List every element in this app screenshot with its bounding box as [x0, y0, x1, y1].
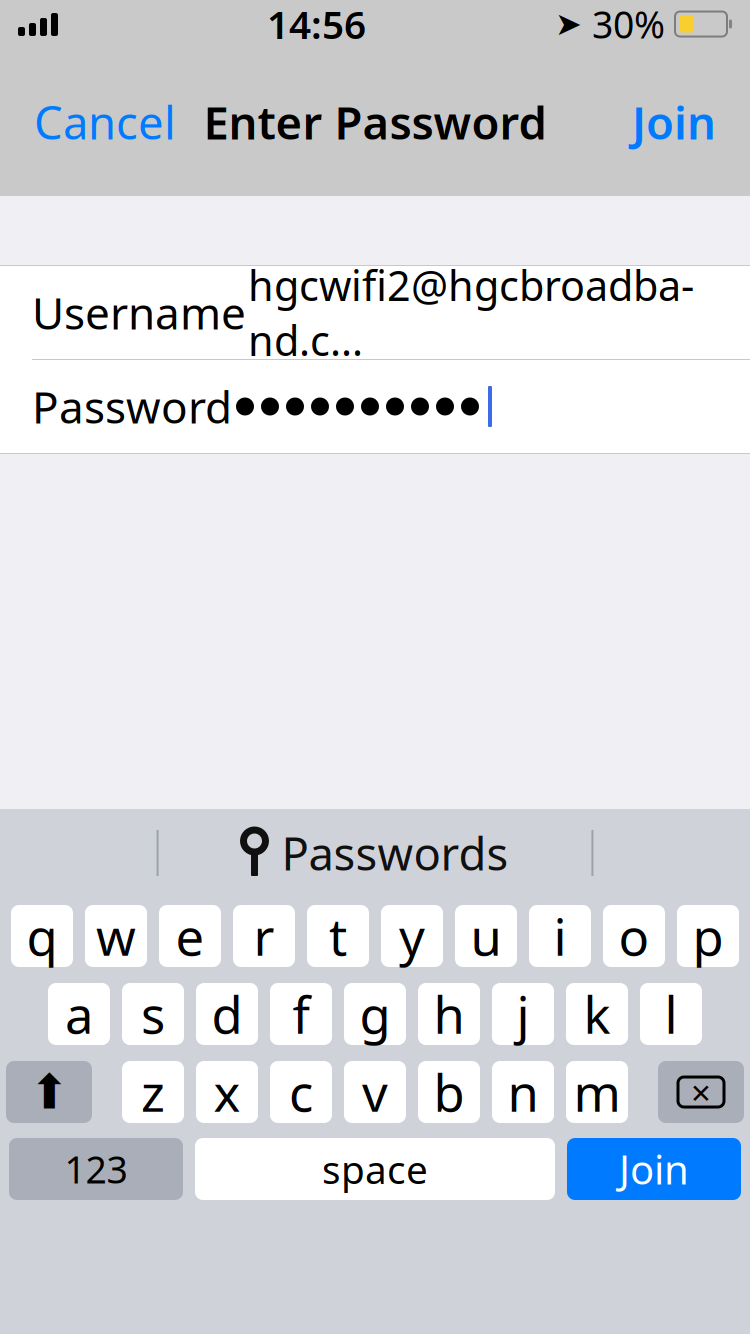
staticText: Passwords	[281, 823, 508, 883]
button[interactable]: c	[270, 1061, 332, 1123]
button[interactable]: v	[344, 1061, 406, 1123]
staticText: h	[433, 980, 464, 1048]
button[interactable]: Password	[0, 360, 750, 453]
staticText: o	[618, 902, 649, 970]
staticText: d	[211, 980, 242, 1048]
button[interactable]: g	[344, 983, 406, 1045]
staticText: g	[359, 980, 390, 1048]
staticText: w	[96, 902, 136, 970]
staticText: a	[65, 980, 93, 1048]
button[interactable]: w	[85, 905, 147, 967]
button[interactable]: h	[418, 983, 480, 1045]
staticText: m	[573, 1058, 620, 1126]
staticText: Password	[32, 377, 232, 436]
button[interactable]: Delete	[658, 1061, 744, 1123]
staticText: 123	[64, 1144, 127, 1194]
staticText: n	[507, 1058, 538, 1126]
button[interactable]: Username	[0, 266, 750, 359]
button[interactable]: a	[48, 983, 110, 1045]
staticText: f	[292, 980, 309, 1048]
button[interactable]: space	[195, 1138, 555, 1200]
staticText: hgcwifi2@hgcbroadband.c...	[248, 258, 694, 367]
button[interactable]: l	[640, 983, 702, 1045]
staticText: s	[141, 980, 165, 1048]
button[interactable]: t	[307, 905, 369, 967]
staticText: l	[664, 980, 677, 1048]
button[interactable]: q	[11, 905, 73, 967]
staticText: r	[253, 902, 274, 970]
staticText: Join	[619, 1142, 689, 1195]
staticText: 30%	[592, 0, 665, 49]
staticText: Username	[32, 283, 246, 342]
button[interactable]: Cancel	[18, 82, 192, 162]
staticText: ⬆	[29, 1065, 69, 1119]
button[interactable]: Join	[616, 82, 732, 162]
staticText: p	[692, 902, 723, 970]
button[interactable]: z	[122, 1061, 184, 1123]
button[interactable]: Shift	[6, 1061, 92, 1123]
button[interactable]: n	[492, 1061, 554, 1123]
button[interactable]: p	[677, 905, 739, 967]
button[interactable]: f	[270, 983, 332, 1045]
button[interactable]: i	[529, 905, 591, 967]
staticText: ×	[691, 1069, 711, 1115]
staticText: q	[26, 902, 57, 970]
staticText: Cancel	[34, 92, 176, 152]
button[interactable]: x	[196, 1061, 258, 1123]
staticText: k	[583, 980, 610, 1048]
button[interactable]: k	[566, 983, 628, 1045]
staticText: y	[399, 902, 425, 970]
button[interactable]: Join	[567, 1138, 741, 1200]
button[interactable]: s	[122, 983, 184, 1045]
staticText: 14:56	[267, 0, 366, 50]
staticText: v	[362, 1058, 388, 1126]
button[interactable]: e	[159, 905, 221, 967]
button[interactable]: j	[492, 983, 554, 1045]
staticText: c	[289, 1058, 313, 1126]
staticText: ➤	[555, 6, 582, 42]
staticText: Join	[632, 92, 716, 152]
staticText: Enter Password	[203, 92, 546, 152]
button[interactable]: o	[603, 905, 665, 967]
button[interactable]: u	[455, 905, 517, 967]
button[interactable]: r	[233, 905, 295, 967]
button[interactable]: d	[196, 983, 258, 1045]
button[interactable]: y	[381, 905, 443, 967]
staticText: t	[329, 902, 347, 970]
staticText: space	[322, 1143, 428, 1195]
staticText: x	[213, 1058, 240, 1126]
button[interactable]: b	[418, 1061, 480, 1123]
staticText: i	[553, 902, 566, 970]
staticText: z	[141, 1058, 165, 1126]
button[interactable]: m	[566, 1061, 628, 1123]
button[interactable]: 123	[9, 1138, 183, 1200]
button[interactable]: Passwords	[217, 815, 532, 891]
staticText: b	[433, 1058, 464, 1126]
staticText: u	[470, 902, 501, 970]
staticText: j	[516, 980, 529, 1048]
staticText: e	[175, 902, 204, 970]
